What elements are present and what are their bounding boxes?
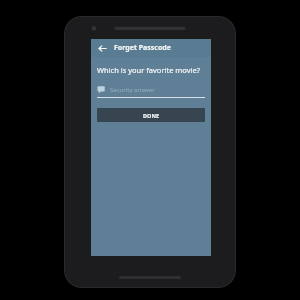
staticText: DONE: [143, 112, 159, 119]
staticText: Forget Passcode: [114, 43, 171, 53]
staticText: Which is your favorite movie?: [97, 65, 200, 75]
button[interactable]: Security answer: [97, 85, 205, 98]
staticText: Security answer: [110, 86, 155, 94]
button[interactable]: Back: [95, 41, 109, 55]
button[interactable]: DONE: [97, 108, 205, 122]
